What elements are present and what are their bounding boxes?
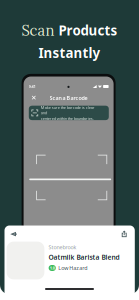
staticText: Instantly bbox=[38, 44, 100, 62]
staticText: Oatmilk Barista Blend bbox=[49, 253, 120, 262]
staticText: Products bbox=[58, 21, 117, 39]
staticText: Stonebrook bbox=[49, 244, 77, 251]
button[interactable]: Share bbox=[122, 231, 126, 237]
button[interactable]: Back bbox=[11, 232, 17, 236]
staticText: Scan bbox=[21, 21, 54, 40]
staticText: centered within the boundaries. bbox=[41, 116, 94, 121]
staticText: 1.0 bbox=[50, 265, 55, 271]
staticText: Make sure the barcode is clear and bbox=[41, 105, 95, 115]
staticText: Low Hazard bbox=[58, 264, 87, 271]
staticText: 9:41 bbox=[29, 84, 36, 89]
button[interactable]: Close bbox=[32, 96, 35, 99]
staticText: Scan a Barcode bbox=[50, 94, 88, 101]
